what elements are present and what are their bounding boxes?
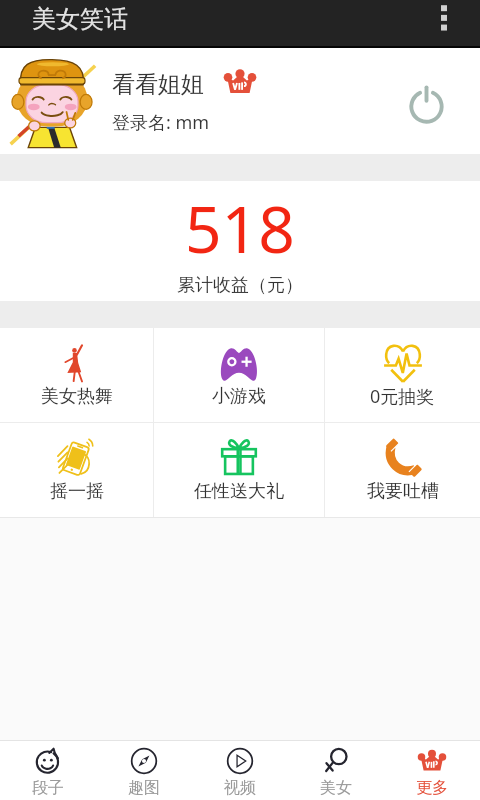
staticText: 更多 <box>416 778 448 798</box>
button[interactable]: 段子 <box>0 741 96 800</box>
staticText: 我要吐槽 <box>367 480 439 503</box>
button[interactable]: 美女 <box>288 741 384 800</box>
button[interactable]: 美女热舞 <box>0 328 153 422</box>
staticText: 518 <box>185 185 295 272</box>
staticText: 小游戏 <box>212 385 266 408</box>
button[interactable]: More options <box>424 0 470 46</box>
staticText: 0元抽奖 <box>370 384 435 409</box>
button[interactable]: 小游戏 <box>154 328 324 422</box>
button[interactable]: 摇一摇 <box>0 423 153 517</box>
button[interactable]: 视频 <box>192 741 288 800</box>
staticText: 看看姐姐 <box>112 70 204 99</box>
button[interactable]: 趣图 <box>96 741 192 800</box>
staticText: 美女热舞 <box>41 385 113 408</box>
button[interactable]: 任性送大礼 <box>154 423 324 517</box>
staticText: 累计收益（元） <box>177 274 303 297</box>
staticText: 美女笑话 <box>32 4 128 34</box>
button[interactable]: 看看姐姐 <box>0 48 480 154</box>
staticText: 视频 <box>224 778 256 798</box>
button[interactable]: 0元抽奖 <box>325 328 480 422</box>
staticText: 任性送大礼 <box>194 480 284 503</box>
staticText: 登录名: mm <box>112 110 210 135</box>
button[interactable]: 更多 <box>384 741 480 800</box>
staticText: 段子 <box>32 778 64 798</box>
staticText: 趣图 <box>128 778 160 798</box>
button[interactable]: Logout <box>399 74 453 128</box>
staticText: 美女 <box>320 778 352 798</box>
button[interactable]: 我要吐槽 <box>325 423 480 517</box>
staticText: 摇一摇 <box>50 480 104 503</box>
